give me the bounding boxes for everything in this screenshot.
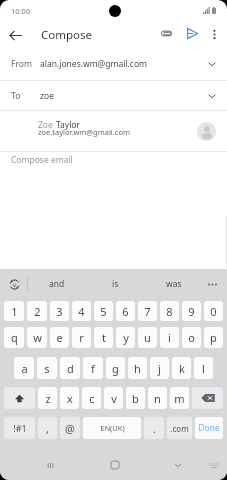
button[interactable]: From (0, 48, 227, 80)
button[interactable]: @ (60, 417, 80, 439)
button[interactable]: r (72, 327, 91, 348)
button[interactable]: was (153, 270, 195, 298)
button[interactable]: p (204, 327, 223, 348)
staticText: f (91, 361, 95, 376)
staticText: w (33, 330, 42, 345)
staticText: @ (65, 421, 75, 436)
button[interactable]: y (116, 327, 135, 348)
staticText: o (188, 330, 195, 345)
staticText: g (112, 361, 119, 376)
button[interactable]: c (82, 387, 101, 409)
button[interactable]: Shift (4, 387, 35, 409)
button[interactable]: Navigate up (4, 24, 27, 47)
staticText: 2 (34, 304, 41, 319)
button[interactable]: Home (101, 451, 129, 479)
button[interactable]: v (104, 387, 123, 409)
button[interactable]: u (138, 327, 157, 348)
staticText: n (154, 391, 161, 406)
button[interactable]: 4 (72, 301, 91, 321)
button[interactable]: . (144, 417, 164, 439)
button[interactable]: g (106, 357, 125, 379)
button[interactable]: 8 (160, 301, 179, 321)
staticText: z (45, 391, 51, 406)
staticText: zoe.taylor.wm@gmail.com (38, 127, 130, 137)
button[interactable]: , (38, 417, 57, 439)
button[interactable]: Send (181, 22, 203, 44)
staticText: 8 (166, 304, 173, 319)
button[interactable]: Back (164, 451, 192, 479)
button[interactable]: z (38, 387, 57, 409)
button[interactable]: 9 (182, 301, 201, 321)
button[interactable]: t (94, 327, 113, 348)
staticText: !#1 (13, 422, 27, 434)
button[interactable]: Emoji and GIF (5, 275, 24, 294)
staticText: v (111, 391, 117, 406)
staticText: , (46, 421, 49, 436)
staticText: From (11, 58, 32, 70)
button[interactable]: n (148, 387, 167, 409)
staticText: 7 (144, 304, 151, 319)
button[interactable]: l (194, 357, 213, 379)
staticText: 1 (11, 304, 18, 319)
staticText: a (21, 361, 28, 376)
staticText: u (144, 330, 151, 345)
button[interactable]: Attach file (155, 22, 177, 44)
staticText: and (49, 278, 65, 290)
button[interactable]: Recent apps (36, 451, 64, 479)
button[interactable]: Zoe (0, 111, 227, 151)
staticText: c (89, 391, 95, 406)
staticText: is (112, 278, 119, 290)
button[interactable]: 1 (4, 301, 24, 321)
staticText: Zoe (38, 119, 56, 131)
staticText: k (179, 361, 185, 376)
staticText: b (132, 391, 139, 406)
button[interactable]: q (4, 327, 24, 348)
button[interactable]: e (50, 327, 69, 348)
staticText: d (67, 361, 74, 376)
button[interactable]: More options (204, 24, 225, 45)
staticText: q (11, 330, 18, 345)
button[interactable]: .com (167, 417, 192, 439)
staticText: To (11, 90, 21, 102)
staticText: 4 (78, 304, 85, 319)
staticText: j (158, 361, 161, 376)
button[interactable]: j (150, 357, 169, 379)
button[interactable]: Delete (192, 387, 223, 409)
button[interactable]: h (128, 357, 147, 379)
staticText: Taylor (56, 119, 80, 131)
button[interactable]: m (170, 387, 189, 409)
staticText: m (174, 391, 185, 406)
button[interactable]: d (60, 357, 80, 379)
button[interactable]: i (160, 327, 179, 348)
button[interactable]: k (172, 357, 191, 379)
staticText: Done (198, 422, 220, 434)
button[interactable]: 0 (204, 301, 223, 321)
button[interactable]: 6 (116, 301, 135, 321)
staticText: 10:00 (11, 6, 31, 16)
button[interactable]: a (14, 357, 34, 379)
button[interactable]: Hide keyboard (203, 454, 225, 476)
staticText: 0 (210, 304, 217, 319)
button[interactable]: b (126, 387, 145, 409)
button[interactable]: Done (195, 417, 223, 439)
button[interactable]: More suggestions (203, 275, 221, 293)
button[interactable]: To (0, 81, 227, 110)
staticText: i (168, 330, 171, 345)
button[interactable]: !#1 (4, 417, 35, 439)
button[interactable]: o (182, 327, 201, 348)
button[interactable]: w (27, 327, 47, 348)
staticText: .com (170, 423, 189, 434)
button[interactable]: is (94, 270, 136, 298)
button[interactable]: and (36, 270, 78, 298)
staticText: alan.jones.wm@gmail.com (40, 58, 148, 70)
staticText: Compose email (11, 154, 73, 166)
button[interactable]: f (83, 357, 103, 379)
staticText: e (56, 330, 63, 345)
button[interactable]: 7 (138, 301, 157, 321)
button[interactable]: 5 (94, 301, 113, 321)
button[interactable]: EN(UK) (83, 417, 141, 439)
button[interactable]: 3 (50, 301, 69, 321)
button[interactable]: 2 (27, 301, 47, 321)
button[interactable]: s (37, 357, 57, 379)
button[interactable]: x (60, 387, 79, 409)
